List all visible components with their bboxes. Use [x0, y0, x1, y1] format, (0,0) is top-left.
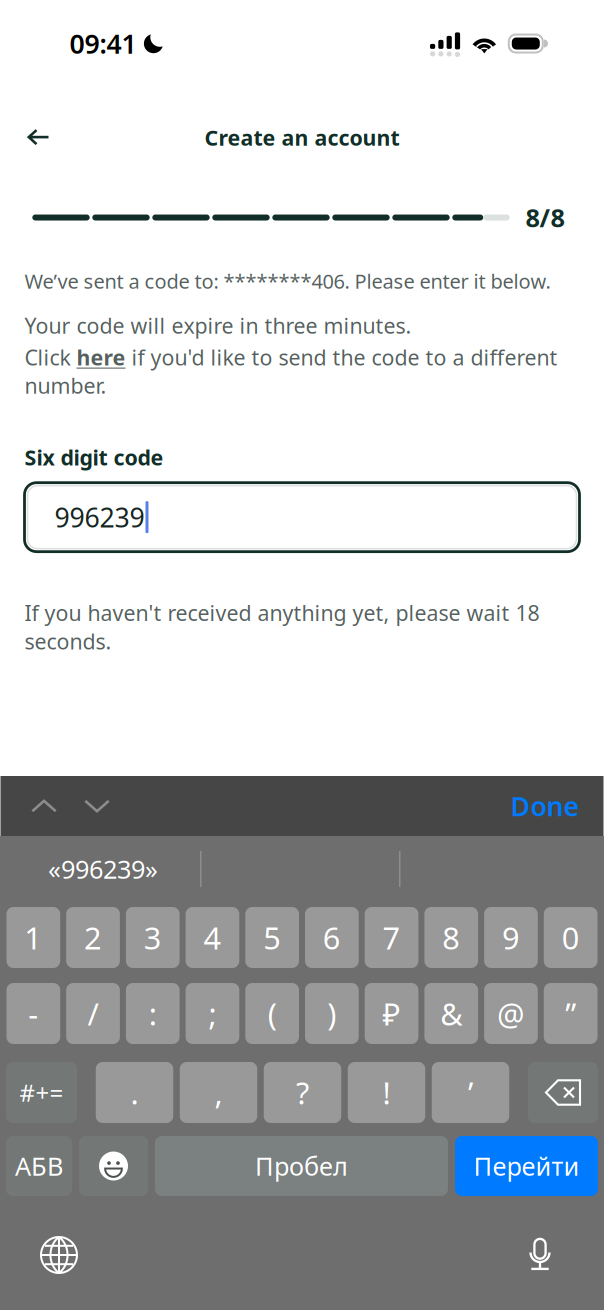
button[interactable]: Back — [14, 115, 62, 159]
staticText: If you haven't received anything yet, pl… — [24, 599, 539, 655]
staticText: Пробел — [255, 1149, 348, 1183]
button[interactable]: 1 — [6, 907, 60, 968]
staticText: 996239 — [54, 499, 144, 535]
staticText: Done — [510, 788, 579, 824]
staticText: 2 — [84, 917, 102, 958]
staticText: «996239» — [48, 852, 158, 886]
staticText: & — [440, 993, 462, 1034]
staticText: : — [149, 993, 157, 1034]
button[interactable]: ) — [305, 983, 359, 1044]
button[interactable]: ( — [245, 983, 299, 1044]
staticText: 8 — [442, 917, 460, 958]
button[interactable]: Done — [502, 776, 587, 836]
staticText: ( — [268, 993, 277, 1034]
button[interactable]: 3 — [126, 907, 180, 968]
button[interactable]: 0 — [544, 907, 597, 968]
button[interactable]: Dictate — [512, 1227, 568, 1283]
button[interactable]: Delete — [528, 1062, 598, 1123]
staticText: We’ve sent a code to: ********406. Pleas… — [24, 268, 550, 294]
button[interactable]: & — [424, 983, 478, 1044]
button[interactable]: ₽ — [365, 983, 418, 1044]
button[interactable]: Перейти — [455, 1136, 598, 1196]
staticText: 1 — [24, 917, 42, 958]
staticText: Перейти — [473, 1149, 579, 1183]
button[interactable]: Previous field — [17, 776, 70, 836]
staticText: 3 — [144, 917, 162, 958]
button[interactable]: - — [6, 983, 60, 1044]
staticText: #+= — [19, 1077, 63, 1108]
staticText: @ — [497, 993, 525, 1034]
staticText: - — [28, 993, 38, 1034]
staticText: ! — [382, 1072, 390, 1113]
button[interactable]: #+= — [6, 1062, 77, 1123]
staticText: Six digit code — [24, 443, 163, 471]
button[interactable]: Switch keyboard — [31, 1227, 87, 1283]
staticText: ” — [565, 993, 576, 1034]
button[interactable]: ! — [348, 1062, 425, 1123]
staticText: . — [130, 1072, 138, 1113]
staticText: ) — [327, 993, 336, 1034]
button[interactable]: . — [96, 1062, 173, 1123]
staticText: ’ — [468, 1072, 473, 1113]
button[interactable]: Emoji — [79, 1136, 148, 1196]
staticText: 9 — [502, 917, 520, 958]
button[interactable]: : — [126, 983, 180, 1044]
button[interactable]: , — [180, 1062, 257, 1123]
staticText: 0 — [562, 917, 580, 958]
button[interactable]: ? — [264, 1062, 341, 1123]
button[interactable]: 5 — [245, 907, 299, 968]
button[interactable]: @ — [484, 983, 538, 1044]
staticText: / — [88, 993, 99, 1034]
staticText: ? — [296, 1072, 309, 1113]
button[interactable]: 8 — [424, 907, 478, 968]
button[interactable]: ” — [544, 983, 597, 1044]
staticText: 09:41 — [69, 26, 136, 61]
staticText: 6 — [323, 917, 341, 958]
button[interactable]: Пробел — [155, 1136, 448, 1196]
staticText: 4 — [203, 917, 221, 958]
staticText: Click here if you'd like to send the cod… — [24, 343, 557, 400]
button[interactable]: 9 — [484, 907, 538, 968]
button[interactable]: 6 — [305, 907, 359, 968]
staticText: 7 — [383, 917, 401, 958]
staticText: ₽ — [383, 993, 401, 1034]
button[interactable]: 4 — [186, 907, 239, 968]
staticText: Create an account — [204, 123, 399, 152]
staticText: 8/8 — [525, 201, 564, 234]
button[interactable]: 2 — [66, 907, 120, 968]
button[interactable]: Next field — [70, 776, 123, 836]
staticText: 5 — [263, 917, 281, 958]
button[interactable]: ; — [186, 983, 239, 1044]
staticText: , — [214, 1072, 222, 1113]
staticText: Your code will expire in three minutes. — [24, 311, 411, 340]
button[interactable]: 7 — [365, 907, 418, 968]
button[interactable]: АБВ — [6, 1136, 72, 1196]
button[interactable]: ’ — [432, 1062, 509, 1123]
staticText: АБВ — [15, 1149, 63, 1183]
button[interactable]: / — [66, 983, 120, 1044]
staticText: ; — [208, 993, 216, 1034]
